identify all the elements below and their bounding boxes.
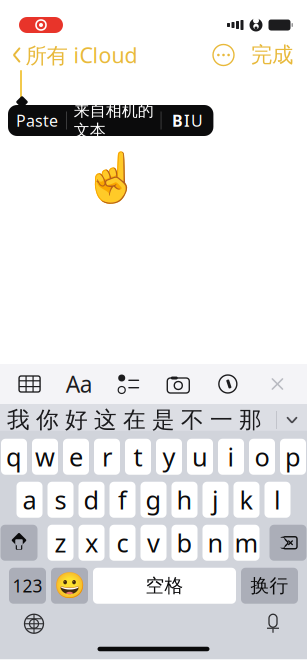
button[interactable]: b — [171, 525, 197, 561]
button[interactable]: 表情符号 — [51, 568, 88, 604]
staticText: y — [162, 440, 175, 473]
button[interactable]: g — [140, 482, 166, 518]
staticText: ☝️ — [82, 150, 142, 205]
button[interactable]: r — [94, 439, 120, 475]
button[interactable]: j — [202, 482, 228, 518]
button[interactable]: 相机 — [158, 367, 198, 401]
staticText: 完成 — [251, 42, 293, 68]
button[interactable]: e — [63, 439, 89, 475]
staticText: l — [274, 483, 281, 516]
button[interactable]: p — [280, 439, 306, 475]
staticText: n — [207, 526, 223, 559]
button[interactable]: l — [264, 482, 290, 518]
button[interactable]: 好 — [62, 404, 91, 436]
staticText: m — [234, 526, 258, 559]
staticText: j — [212, 483, 219, 516]
staticText: w — [35, 440, 55, 473]
staticText: u — [192, 440, 208, 473]
staticText: 这 — [94, 406, 117, 434]
button[interactable]: Paste — [8, 105, 66, 136]
staticText: b — [176, 526, 192, 559]
button[interactable]: y — [156, 439, 182, 475]
button[interactable]: B — [161, 105, 213, 136]
staticText: 空格 — [145, 574, 183, 597]
button[interactable]: 我 — [4, 404, 33, 436]
button[interactable]: 在 — [120, 404, 149, 436]
staticText: g — [145, 483, 161, 516]
staticText: h — [176, 483, 192, 516]
button[interactable]: 一 — [207, 404, 236, 436]
button[interactable]: i — [218, 439, 244, 475]
staticText: p — [285, 440, 301, 473]
button[interactable]: 更多 — [208, 39, 239, 70]
staticText: 来自相机的文本 — [74, 101, 154, 140]
staticText: 所有 iCloud — [26, 41, 138, 69]
staticText: 好 — [65, 406, 88, 434]
staticText: x — [85, 526, 98, 559]
staticText: e — [69, 440, 83, 473]
staticText: z — [54, 526, 66, 559]
button[interactable]: z — [47, 525, 73, 561]
button[interactable]: 表格 — [10, 367, 50, 401]
button[interactable]: x — [78, 525, 104, 561]
staticText: 你 — [36, 406, 59, 434]
button[interactable]: u — [187, 439, 213, 475]
staticText: 123 — [12, 574, 42, 597]
staticText: q — [6, 440, 22, 473]
button[interactable]: 标记 — [208, 367, 248, 401]
staticText: 不 — [181, 406, 204, 434]
button[interactable]: h — [171, 482, 197, 518]
staticText: f — [118, 483, 127, 516]
staticText: 换行 — [250, 574, 288, 597]
button[interactable]: k — [233, 482, 259, 518]
button[interactable]: q — [1, 439, 27, 475]
staticText: c — [116, 526, 128, 559]
button[interactable]: 删除 — [269, 525, 306, 561]
staticText: v — [147, 526, 160, 559]
button[interactable]: Shift — [0, 525, 37, 561]
button[interactable]: 是 — [149, 404, 178, 436]
button[interactable]: 听写 — [253, 609, 307, 639]
staticText: d — [83, 483, 99, 516]
staticText: i — [227, 440, 234, 473]
staticText: Aa — [66, 369, 93, 399]
button[interactable]: 不 — [178, 404, 207, 436]
button[interactable]: 完成 — [239, 36, 307, 74]
button[interactable]: 所有 iCloud — [0, 35, 138, 75]
staticText: r — [102, 440, 112, 473]
button[interactable]: a — [16, 482, 42, 518]
staticText: 我 — [7, 406, 30, 434]
button[interactable]: 那 — [236, 404, 265, 436]
staticText: Paste — [16, 110, 58, 131]
button[interactable]: 格式 — [59, 367, 99, 401]
button[interactable]: t — [125, 439, 151, 475]
button[interactable]: 这 — [91, 404, 120, 436]
staticText: t — [133, 440, 142, 473]
button[interactable]: n — [202, 525, 228, 561]
button[interactable]: 你 — [33, 404, 62, 436]
button[interactable]: 切换键盘 — [0, 609, 54, 639]
button[interactable]: 123 — [9, 568, 46, 604]
button[interactable]: 展开候选词 — [277, 404, 307, 436]
button[interactable]: v — [140, 525, 166, 561]
button[interactable]: m — [233, 525, 259, 561]
staticText: B — [172, 110, 183, 131]
staticText: s — [54, 483, 66, 516]
staticText: k — [239, 483, 253, 516]
button[interactable]: w — [32, 439, 58, 475]
staticText: U — [191, 110, 203, 131]
button[interactable]: 来自相机的文本 — [67, 105, 161, 136]
staticText: o — [254, 440, 269, 473]
button[interactable]: 换行 — [241, 568, 298, 604]
button[interactable]: 空格 — [93, 568, 236, 604]
button[interactable]: 关闭 — [257, 367, 297, 401]
button[interactable]: c — [109, 525, 135, 561]
staticText: a — [22, 483, 36, 516]
staticText: 一 — [210, 406, 233, 434]
staticText: 在 — [123, 406, 146, 434]
button[interactable]: o — [249, 439, 275, 475]
button[interactable]: f — [109, 482, 135, 518]
button[interactable]: s — [47, 482, 73, 518]
button[interactable]: 清单 — [109, 367, 149, 401]
button[interactable]: d — [78, 482, 104, 518]
